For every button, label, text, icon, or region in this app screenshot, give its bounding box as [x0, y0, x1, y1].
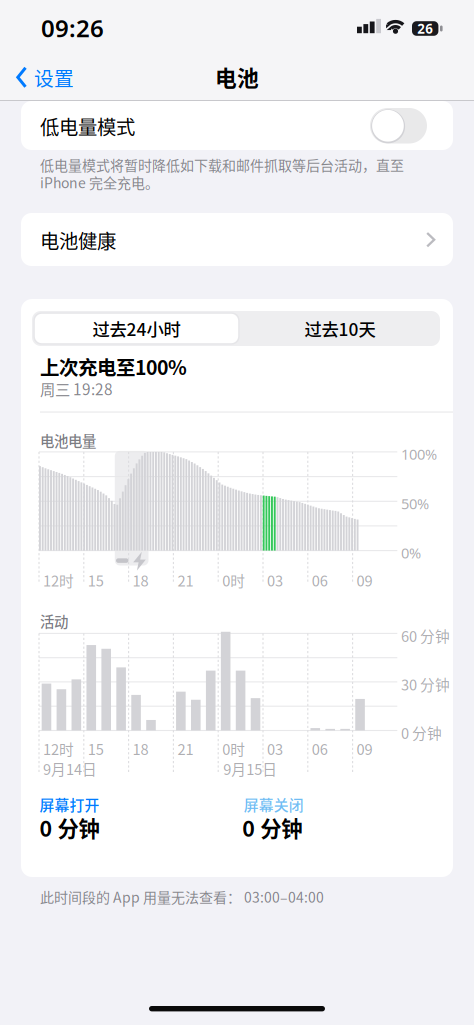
staticText: 09:26 — [41, 12, 104, 44]
staticText: 0% — [401, 543, 421, 563]
staticText: 0 分钟 — [39, 812, 99, 843]
staticText: 09 — [357, 569, 373, 591]
staticText: 21 — [177, 738, 193, 759]
button[interactable]: 过去24小时 — [35, 314, 238, 343]
staticText: 此时间段的 App 用量无法查看： 03:00–04:00 — [40, 886, 324, 907]
staticText: 0时 — [222, 569, 245, 591]
staticText: 09 — [357, 738, 373, 759]
staticText: 18 — [133, 738, 149, 759]
staticText: 15 — [88, 738, 104, 759]
staticText: 活动 — [40, 610, 68, 631]
staticText: 100% — [401, 444, 437, 464]
staticText: 03 — [267, 569, 283, 591]
staticText: 低电量模式将暂时降低如下载和邮件抓取等后台活动，直至 — [40, 154, 404, 175]
staticText: 电池 — [215, 61, 259, 92]
staticText: 06 — [312, 569, 328, 591]
staticText: 周三 19:28 — [40, 377, 113, 400]
staticText: 06 — [312, 738, 328, 759]
staticText: 屏幕关闭 — [244, 793, 304, 815]
staticText: 50% — [401, 494, 429, 513]
staticText: 18 — [133, 569, 149, 591]
staticText: 21 — [177, 569, 193, 591]
staticText: 30 分钟 — [401, 673, 450, 695]
staticText: 0 分钟 — [242, 812, 302, 843]
staticText: 设置 — [34, 63, 74, 92]
staticText: 26 — [417, 20, 433, 37]
staticText: 0时 — [222, 738, 245, 759]
staticText: 9月15日 — [223, 758, 277, 779]
staticText: 12时 — [43, 569, 74, 591]
staticText: 9月14日 — [43, 758, 97, 779]
staticText: 电池电量 — [40, 430, 96, 451]
staticText: 0 分钟 — [401, 722, 442, 743]
staticText: iPhone 完全充电。 — [40, 172, 159, 192]
button[interactable]: 过去10天 — [240, 311, 440, 346]
staticText: 过去10天 — [304, 316, 375, 341]
staticText: 60 分钟 — [401, 625, 450, 646]
staticText: 过去24小时 — [92, 316, 180, 341]
staticText: 12时 — [43, 738, 74, 759]
staticText: 15 — [88, 569, 104, 591]
staticText: 电池健康 — [40, 226, 116, 254]
staticText: 低电量模式 — [40, 112, 135, 140]
staticText: 屏幕打开 — [39, 793, 99, 815]
staticText: 上次充电至100% — [40, 352, 187, 381]
button[interactable]: 电池健康 — [21, 213, 453, 266]
button[interactable]: 低电量模式 — [370, 108, 427, 143]
button[interactable]: 返回设置 — [16, 63, 74, 92]
staticText: 03 — [267, 738, 283, 759]
